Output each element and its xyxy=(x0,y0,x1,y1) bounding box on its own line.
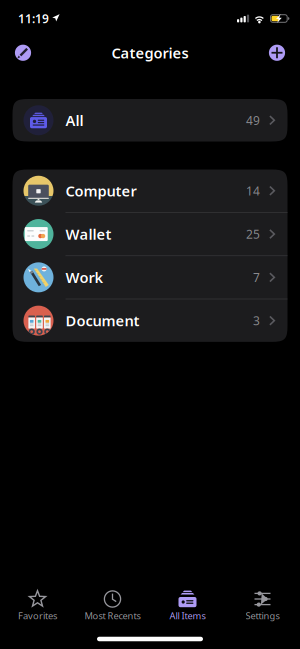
staticText: All xyxy=(65,110,83,130)
button[interactable]: Work xyxy=(12,256,287,299)
staticText: 11:19 xyxy=(18,10,49,26)
staticText: 14 xyxy=(246,183,260,199)
button[interactable]: Add xyxy=(260,36,294,70)
staticText: Document xyxy=(65,311,139,330)
button[interactable]: All xyxy=(12,99,287,141)
button[interactable]: Document xyxy=(12,299,287,342)
staticText: Favorites xyxy=(18,609,57,622)
staticText: Categories xyxy=(111,43,188,62)
staticText: 49 xyxy=(246,112,260,128)
staticText: Wallet xyxy=(65,224,111,244)
staticText: 3 xyxy=(253,313,260,329)
staticText: All Items xyxy=(169,609,205,622)
button[interactable]: Settings xyxy=(225,580,300,629)
button[interactable]: Most Recents xyxy=(75,580,150,629)
staticText: Settings xyxy=(245,609,279,622)
staticText: Computer xyxy=(65,181,136,200)
button[interactable]: Wallet xyxy=(12,213,287,255)
staticText: Work xyxy=(65,268,103,287)
button[interactable]: Computer xyxy=(12,169,287,212)
button[interactable]: Edit xyxy=(6,36,40,70)
button[interactable]: Favorites xyxy=(0,580,75,629)
staticText: 7 xyxy=(253,269,260,285)
staticText: 25 xyxy=(246,226,260,242)
staticText: Most Recents xyxy=(84,609,140,622)
button[interactable]: All Items xyxy=(150,580,225,629)
